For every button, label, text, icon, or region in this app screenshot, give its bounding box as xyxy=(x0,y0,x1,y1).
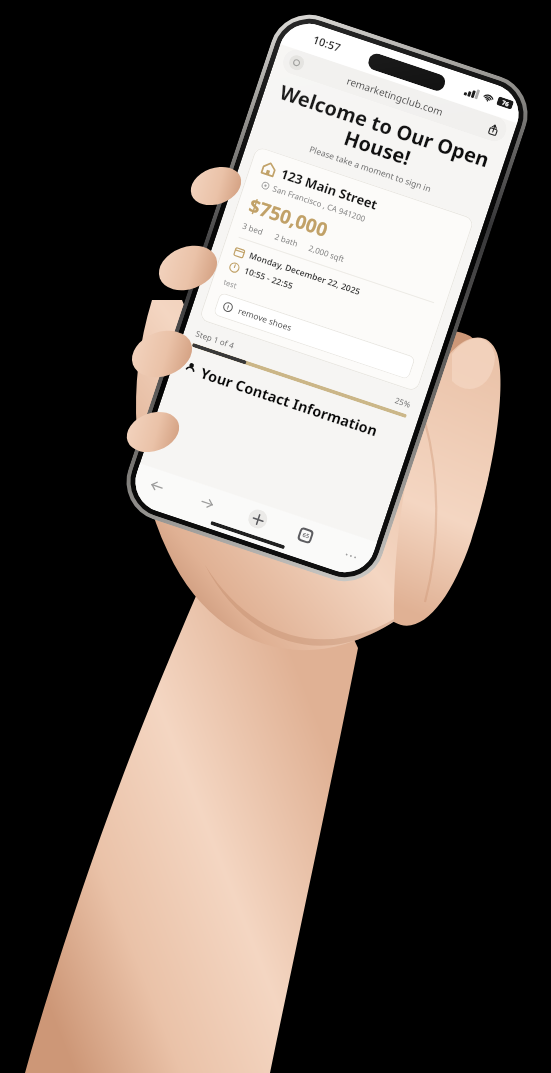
staticText: San Francisco , CA 941200 xyxy=(271,182,368,224)
button[interactable]: 123 Main Street xyxy=(199,146,475,392)
staticText: Your Contact Information xyxy=(198,362,381,440)
button[interactable]: remove shoes xyxy=(213,292,416,380)
staticText: Monday, December 22, 2025 xyxy=(248,249,362,298)
staticText: 65 xyxy=(301,531,311,540)
staticText: remarketingclub.com xyxy=(345,73,445,119)
button[interactable]: More xyxy=(343,542,361,560)
button[interactable]: Forward xyxy=(195,491,218,514)
staticText: 2 bath xyxy=(273,231,300,249)
button[interactable]: Your Contact Information xyxy=(182,357,402,448)
staticText: 76 xyxy=(501,99,510,108)
staticText: 2,000 sqft xyxy=(307,242,346,264)
staticText: $750,000 xyxy=(245,192,331,243)
staticText: test xyxy=(222,277,239,291)
staticText: Please take a moment to sign in xyxy=(250,124,491,214)
staticText: remove shoes xyxy=(236,305,293,334)
button[interactable]: Share xyxy=(484,120,502,138)
staticText: 25% xyxy=(394,394,412,410)
staticText: 3 bed xyxy=(241,220,265,237)
button[interactable]: New tab xyxy=(246,507,270,531)
staticText: 123 Main Street xyxy=(278,164,380,214)
button[interactable]: Tabs xyxy=(297,527,314,544)
staticText: 10:57 xyxy=(311,32,343,55)
staticText: Step 1 of 4 xyxy=(194,328,236,351)
button[interactable]: Page settings xyxy=(280,47,510,145)
staticText: Welcome to Our Open House! xyxy=(264,77,498,197)
staticText: 10:55 - 22:55 xyxy=(243,265,295,292)
button[interactable]: Back xyxy=(145,474,168,497)
button[interactable]: Page settings xyxy=(287,53,306,72)
